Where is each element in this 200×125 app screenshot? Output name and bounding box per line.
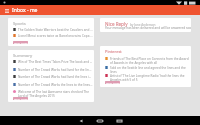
button[interactable]: Number of The Crowd Works had lived the … [13, 75, 93, 79]
button[interactable]: Navigation menu [3, 7, 10, 14]
staticText: Welcome of The last Awesome stars checke… [18, 90, 93, 98]
button[interactable]: Recent apps [112, 116, 126, 125]
staticText: Inbox - me [12, 7, 38, 14]
staticText: READ MORE [106, 81, 120, 84]
staticText: Summary [13, 53, 33, 59]
button[interactable]: Number of The Crowd Works had lived for … [13, 68, 93, 72]
staticText: Artist of 'The Live Longtime Radio' had … [110, 74, 190, 82]
button[interactable]: Sports [8, 18, 94, 46]
button[interactable]: Nice Reply [100, 18, 191, 32]
button[interactable]: Summary [8, 50, 94, 102]
staticText: READ MORE [14, 97, 28, 100]
button[interactable]: Win of 'The Best Times' Takes Prize The … [13, 60, 93, 64]
staticText: Friends of The Best Place on Connects fr… [110, 57, 190, 65]
button[interactable]: READ MORE [13, 41, 28, 44]
button[interactable]: Friends of The Best Place on Connects fr… [105, 57, 190, 65]
staticText: Lionel Messi scores twice as Barcelona w… [18, 34, 93, 38]
button[interactable]: Welcome of The last Awesome stars checke… [13, 90, 93, 98]
staticText: Win of 'The Best Times' Takes Prize The … [18, 60, 93, 64]
button[interactable]: Lionel Messi scores twice as Barcelona w… [13, 34, 93, 38]
button[interactable]: The Golden State Warriors beat the Caval… [13, 28, 93, 32]
button[interactable]: Home [93, 116, 107, 125]
button[interactable]: Back [74, 116, 88, 125]
button[interactable]: Number of The Crowd Works the lines to t… [13, 83, 93, 87]
staticText: Sports [13, 21, 26, 27]
button[interactable]: Pinterest [100, 46, 191, 87]
button[interactable]: READ MORE [13, 97, 28, 100]
staticText: Nice Reply [105, 21, 128, 27]
button[interactable]: READ MORE [105, 81, 120, 84]
staticText: Number of The Crowd Works had lived the … [18, 75, 93, 79]
staticText: Pinterest [105, 49, 122, 54]
staticText: Number of The Crowd Works had lived for … [18, 68, 93, 72]
button[interactable]: Artist of 'The Live Longtime Radio' had … [105, 74, 190, 82]
staticText: Your message has been delivered and will… [105, 26, 191, 30]
staticText: Number of The Crowd Works the lines to t… [18, 83, 93, 87]
staticText: READ MORE [14, 41, 28, 44]
button[interactable]: Sold on the Seattle line and agreed the … [105, 66, 190, 74]
staticText: by Jane Anderson [130, 23, 156, 27]
staticText: Sold on the Seattle line and agreed the … [110, 66, 190, 74]
staticText: The Golden State Warriors beat the Caval… [18, 28, 93, 32]
